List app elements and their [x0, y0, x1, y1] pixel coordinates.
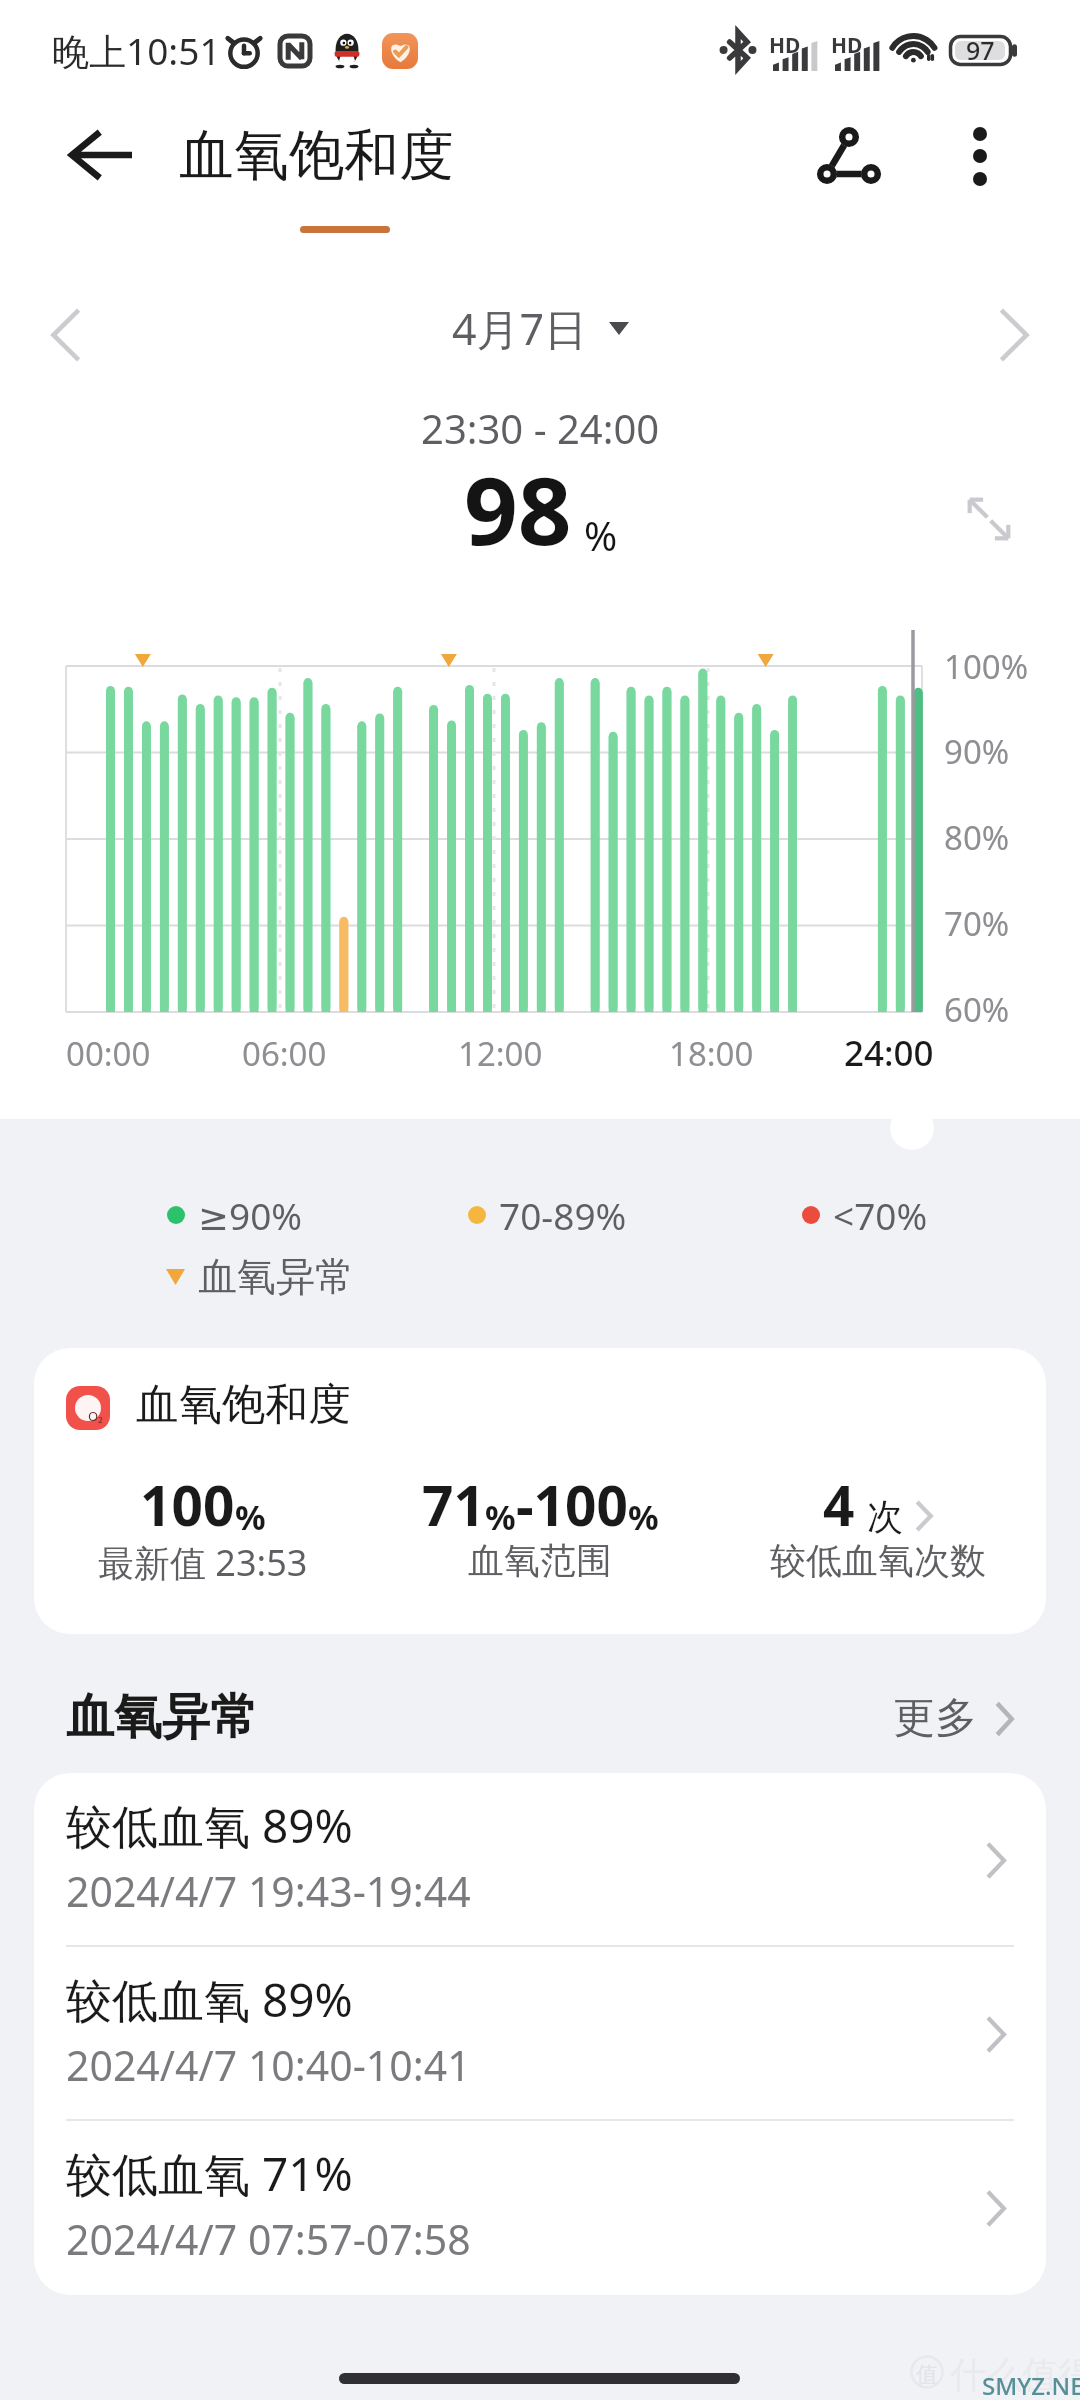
staticText: 2024/4/7 10:40-10:41	[66, 2037, 471, 2093]
staticText: %	[235, 1494, 266, 1540]
staticText: 24:00	[844, 1029, 934, 1077]
staticText: 100%	[944, 644, 1029, 689]
staticText: 较低血氧 71%	[66, 2142, 353, 2205]
staticText: 70%	[944, 901, 1010, 946]
staticText: %	[628, 1494, 659, 1540]
staticText: %	[584, 508, 618, 562]
button[interactable]: Previous day	[16, 285, 116, 385]
button[interactable]: 血氧异常	[166, 1252, 354, 1301]
staticText: 70-89%	[499, 1190, 627, 1240]
button[interactable]: 较低血氧 71%	[34, 2121, 1046, 2295]
staticText: HD	[831, 31, 863, 60]
button[interactable]: 更多	[893, 1692, 1014, 1745]
staticText: 23:30 - 24:00	[421, 401, 660, 455]
button[interactable]: 较低血氧 89%	[34, 1947, 1046, 2121]
staticText: 血氧范围	[468, 1538, 612, 1583]
staticText: 06:00	[242, 1031, 327, 1076]
staticText: 晚上10:51	[52, 25, 221, 76]
staticText: 较低血氧 89%	[66, 1794, 353, 1857]
staticText: 较低血氧 89%	[66, 1968, 353, 2031]
staticText: 80%	[944, 815, 1010, 860]
button[interactable]: 较低血氧 89%	[34, 1773, 1046, 1947]
button[interactable]: 4月7日	[452, 299, 629, 358]
staticText: 90%	[944, 729, 1010, 774]
staticText: 值	[916, 2361, 938, 2389]
staticText: 4	[823, 1467, 855, 1542]
staticText: 18:00	[669, 1031, 754, 1076]
staticText: 更多	[893, 1692, 977, 1745]
staticText: 血氧饱和度	[136, 1378, 351, 1432]
button[interactable]: Next day	[964, 285, 1064, 385]
staticText: 2024/4/7 07:57-07:58	[66, 2211, 471, 2267]
button[interactable]: Expand chart	[890, 1106, 934, 1150]
staticText: 12:00	[458, 1031, 543, 1076]
staticText: 60%	[944, 987, 1010, 1032]
staticText: 98	[464, 445, 572, 571]
staticText: 00:00	[66, 1031, 151, 1076]
staticText: 97	[966, 33, 995, 67]
staticText: 次	[867, 1494, 903, 1539]
staticText: HD	[769, 31, 801, 60]
staticText: 2024/4/7 19:43-19:44	[66, 1863, 471, 1919]
button[interactable]: Share	[794, 100, 904, 210]
button[interactable]: More options	[930, 100, 1040, 210]
staticText: 较低血氧次数	[770, 1538, 986, 1583]
button[interactable]: ≥90%	[166, 1190, 303, 1240]
staticText: 100	[140, 1467, 235, 1542]
staticText: -100	[516, 1467, 628, 1542]
staticText: O₂	[88, 1407, 103, 1425]
staticText: 71	[422, 1467, 485, 1542]
button[interactable]: Back	[46, 100, 156, 210]
button[interactable]: Fullscreen	[948, 478, 1028, 558]
staticText: 4月7日	[452, 299, 588, 358]
staticText: ≥90%	[198, 1190, 303, 1240]
staticText: 血氧饱和度	[179, 121, 454, 190]
staticText: 什么值得买	[950, 2352, 1080, 2397]
staticText: 血氧异常	[198, 1252, 354, 1301]
staticText: 最新值 23:53	[98, 1538, 308, 1587]
staticText: <70%	[833, 1190, 928, 1240]
staticText: 血氧异常	[66, 1687, 258, 1747]
button[interactable]: <70%	[801, 1190, 928, 1240]
button[interactable]: 70-89%	[467, 1190, 627, 1240]
staticText: %	[485, 1494, 516, 1540]
button[interactable]: O₂	[34, 1348, 1046, 1634]
staticText: SMYZ.NET	[982, 2369, 1080, 2400]
